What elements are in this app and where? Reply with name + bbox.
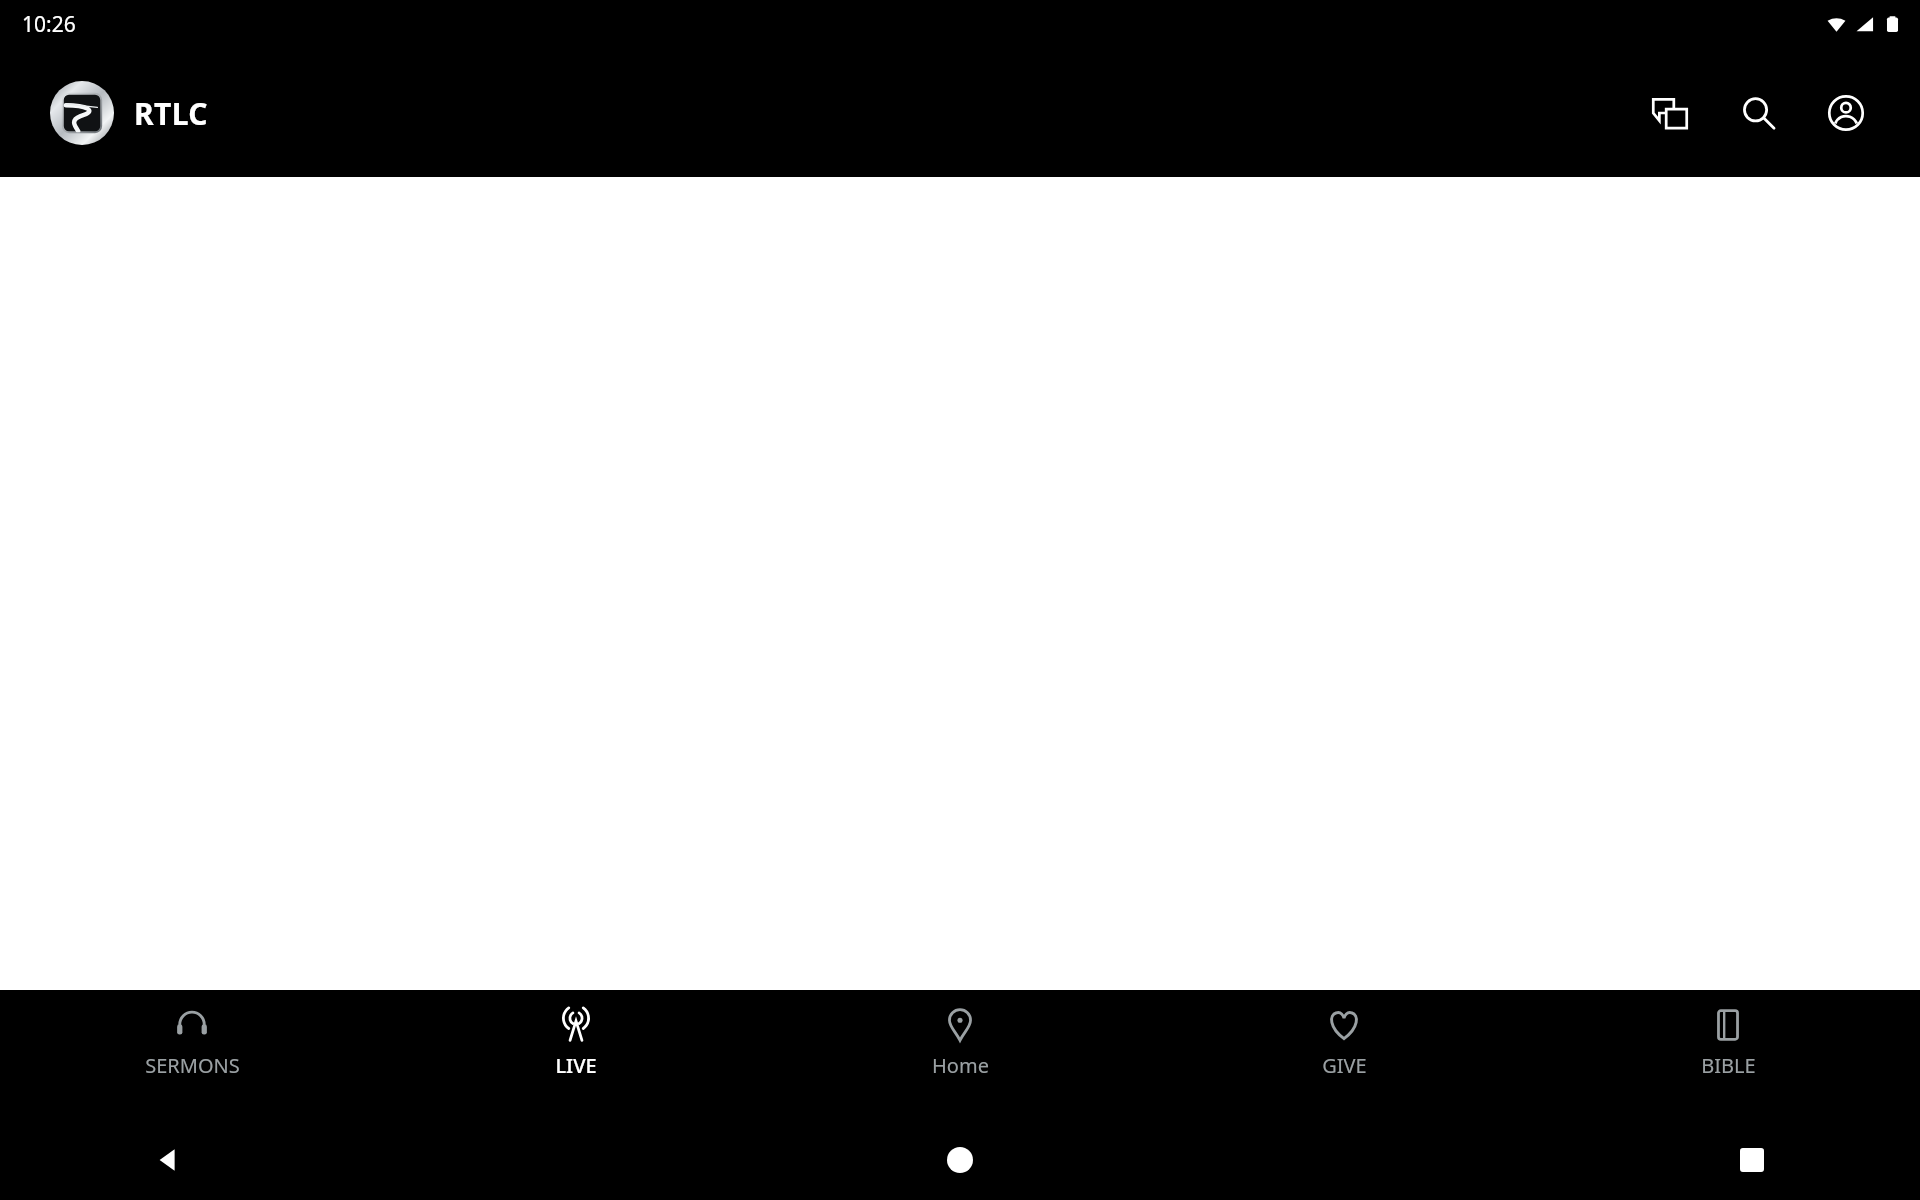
button[interactable]: SERMONS — [0, 990, 384, 1120]
staticText: LIVE — [555, 1052, 597, 1079]
button[interactable]: Back — [140, 1132, 196, 1188]
button[interactable]: BIBLE — [1536, 990, 1920, 1120]
button[interactable]: LIVE — [384, 990, 768, 1120]
staticText: BIBLE — [1701, 1052, 1756, 1079]
button[interactable]: GIVE — [1152, 990, 1536, 1120]
button[interactable]: Search — [1720, 75, 1796, 151]
button[interactable]: Home — [932, 1132, 988, 1188]
button[interactable]: Account — [1808, 75, 1884, 151]
button[interactable]: Recent apps — [1724, 1132, 1780, 1188]
staticText: SERMONS — [145, 1052, 240, 1079]
staticText: 10:26 — [22, 10, 76, 39]
staticText: GIVE — [1322, 1052, 1367, 1079]
button[interactable]: RTLC — [50, 81, 209, 145]
staticText: RTLC — [134, 93, 209, 134]
button[interactable]: Messages — [1632, 75, 1708, 151]
staticText: Home — [932, 1052, 989, 1079]
button[interactable]: Home — [768, 990, 1152, 1120]
